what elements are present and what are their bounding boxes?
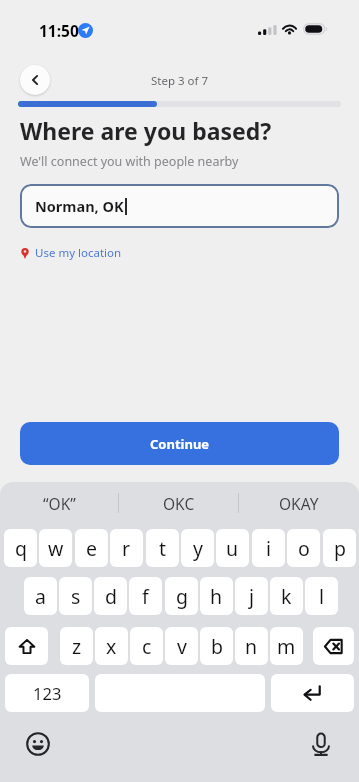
staticText: w [48,535,64,562]
button[interactable]: m [270,627,303,665]
button[interactable]: z [60,627,93,665]
button[interactable]: p [323,529,356,567]
button[interactable]: u [216,529,249,567]
staticText: a [35,583,46,610]
staticText: z [72,633,82,660]
staticText: v [177,633,187,660]
button[interactable]: Continue [20,422,339,465]
staticText: x [106,633,117,660]
staticText: n [245,633,258,660]
button[interactable]: Enter [271,674,354,712]
staticText: j [249,583,255,610]
button[interactable]: Shift [5,627,48,665]
button[interactable]: t [146,529,179,567]
button[interactable]: “OK” [0,482,119,524]
staticText: l [319,583,325,610]
staticText: o [298,535,310,562]
staticText: Continue [150,435,210,453]
button[interactable]: Emoji [26,732,50,756]
button[interactable]: v [165,627,198,665]
staticText: c [142,633,152,660]
button[interactable]: e [75,529,108,567]
button[interactable]: x [95,627,128,665]
button[interactable]: h [200,577,233,615]
button[interactable]: b [200,627,233,665]
button[interactable]: OKC [119,482,239,524]
button[interactable]: a [24,577,57,615]
button[interactable]: 123 [5,674,89,712]
staticText: Step 3 of 7 [151,73,209,89]
staticText: i [266,535,272,562]
button[interactable]: i [252,529,285,567]
button[interactable]: k [270,577,303,615]
staticText: 123 [33,682,62,704]
staticText: h [210,583,223,610]
staticText: k [281,583,292,610]
staticText: Where are you based? [20,115,272,146]
button[interactable]: o [287,529,320,567]
button[interactable]: r [110,529,143,567]
button[interactable]: OKAY [239,482,359,524]
button[interactable]: Use my location [21,245,122,261]
button[interactable]: q [4,529,37,567]
button[interactable]: y [181,529,214,567]
button[interactable]: c [130,627,163,665]
button[interactable]: Norman, OK [20,184,339,228]
button[interactable]: s [59,577,92,615]
staticText: b [211,633,223,660]
staticText: g [176,583,188,610]
staticText: f [142,583,149,610]
staticText: e [86,535,97,562]
staticText: “OK” [43,493,76,514]
staticText: q [15,535,27,562]
button[interactable]: j [235,577,268,615]
staticText: u [226,535,239,562]
staticText: p [334,535,346,562]
button[interactable]: d [94,577,127,615]
staticText: Use my location [35,245,122,261]
button[interactable]: f [129,577,162,615]
staticText: Norman, OK [35,196,124,216]
button[interactable]: Voice input [310,731,332,757]
staticText: We'll connect you with people nearby [20,153,239,170]
staticText: s [71,583,81,610]
button[interactable]: n [235,627,268,665]
button[interactable]: g [165,577,198,615]
staticText: d [105,583,117,610]
staticText: t [159,535,167,562]
staticText: r [122,535,131,562]
staticText: OKC [163,493,195,514]
button[interactable]: l [305,577,338,615]
staticText: y [193,535,203,562]
button[interactable]: w [39,529,72,567]
staticText: m [277,633,296,660]
button[interactable]: Back [20,65,50,95]
button[interactable]: Backspace [313,627,354,665]
staticText: 11:50 [39,20,79,41]
staticText: OKAY [279,493,319,514]
